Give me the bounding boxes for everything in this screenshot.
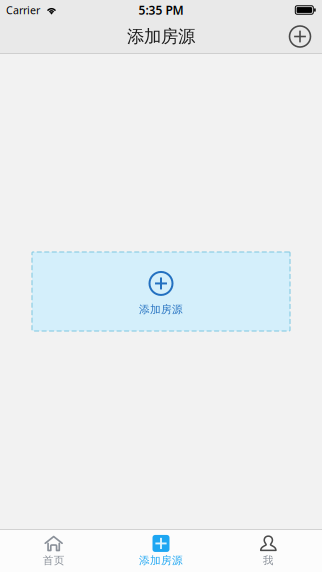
button[interactable]: Add listing xyxy=(278,20,322,53)
staticText: 添加房源 xyxy=(139,554,183,567)
staticText: 添加房源 xyxy=(139,303,183,316)
staticText: 我 xyxy=(263,554,274,567)
staticText: 5:35 PM xyxy=(138,2,183,18)
staticText: 首页 xyxy=(43,554,65,567)
button[interactable]: 我 xyxy=(215,530,322,572)
button[interactable]: 添加房源 xyxy=(107,530,215,572)
staticText: 添加房源 xyxy=(127,26,195,47)
button[interactable]: 首页 xyxy=(0,530,107,572)
staticText: Carrier xyxy=(6,3,40,17)
button[interactable]: 添加房源 xyxy=(32,252,290,331)
